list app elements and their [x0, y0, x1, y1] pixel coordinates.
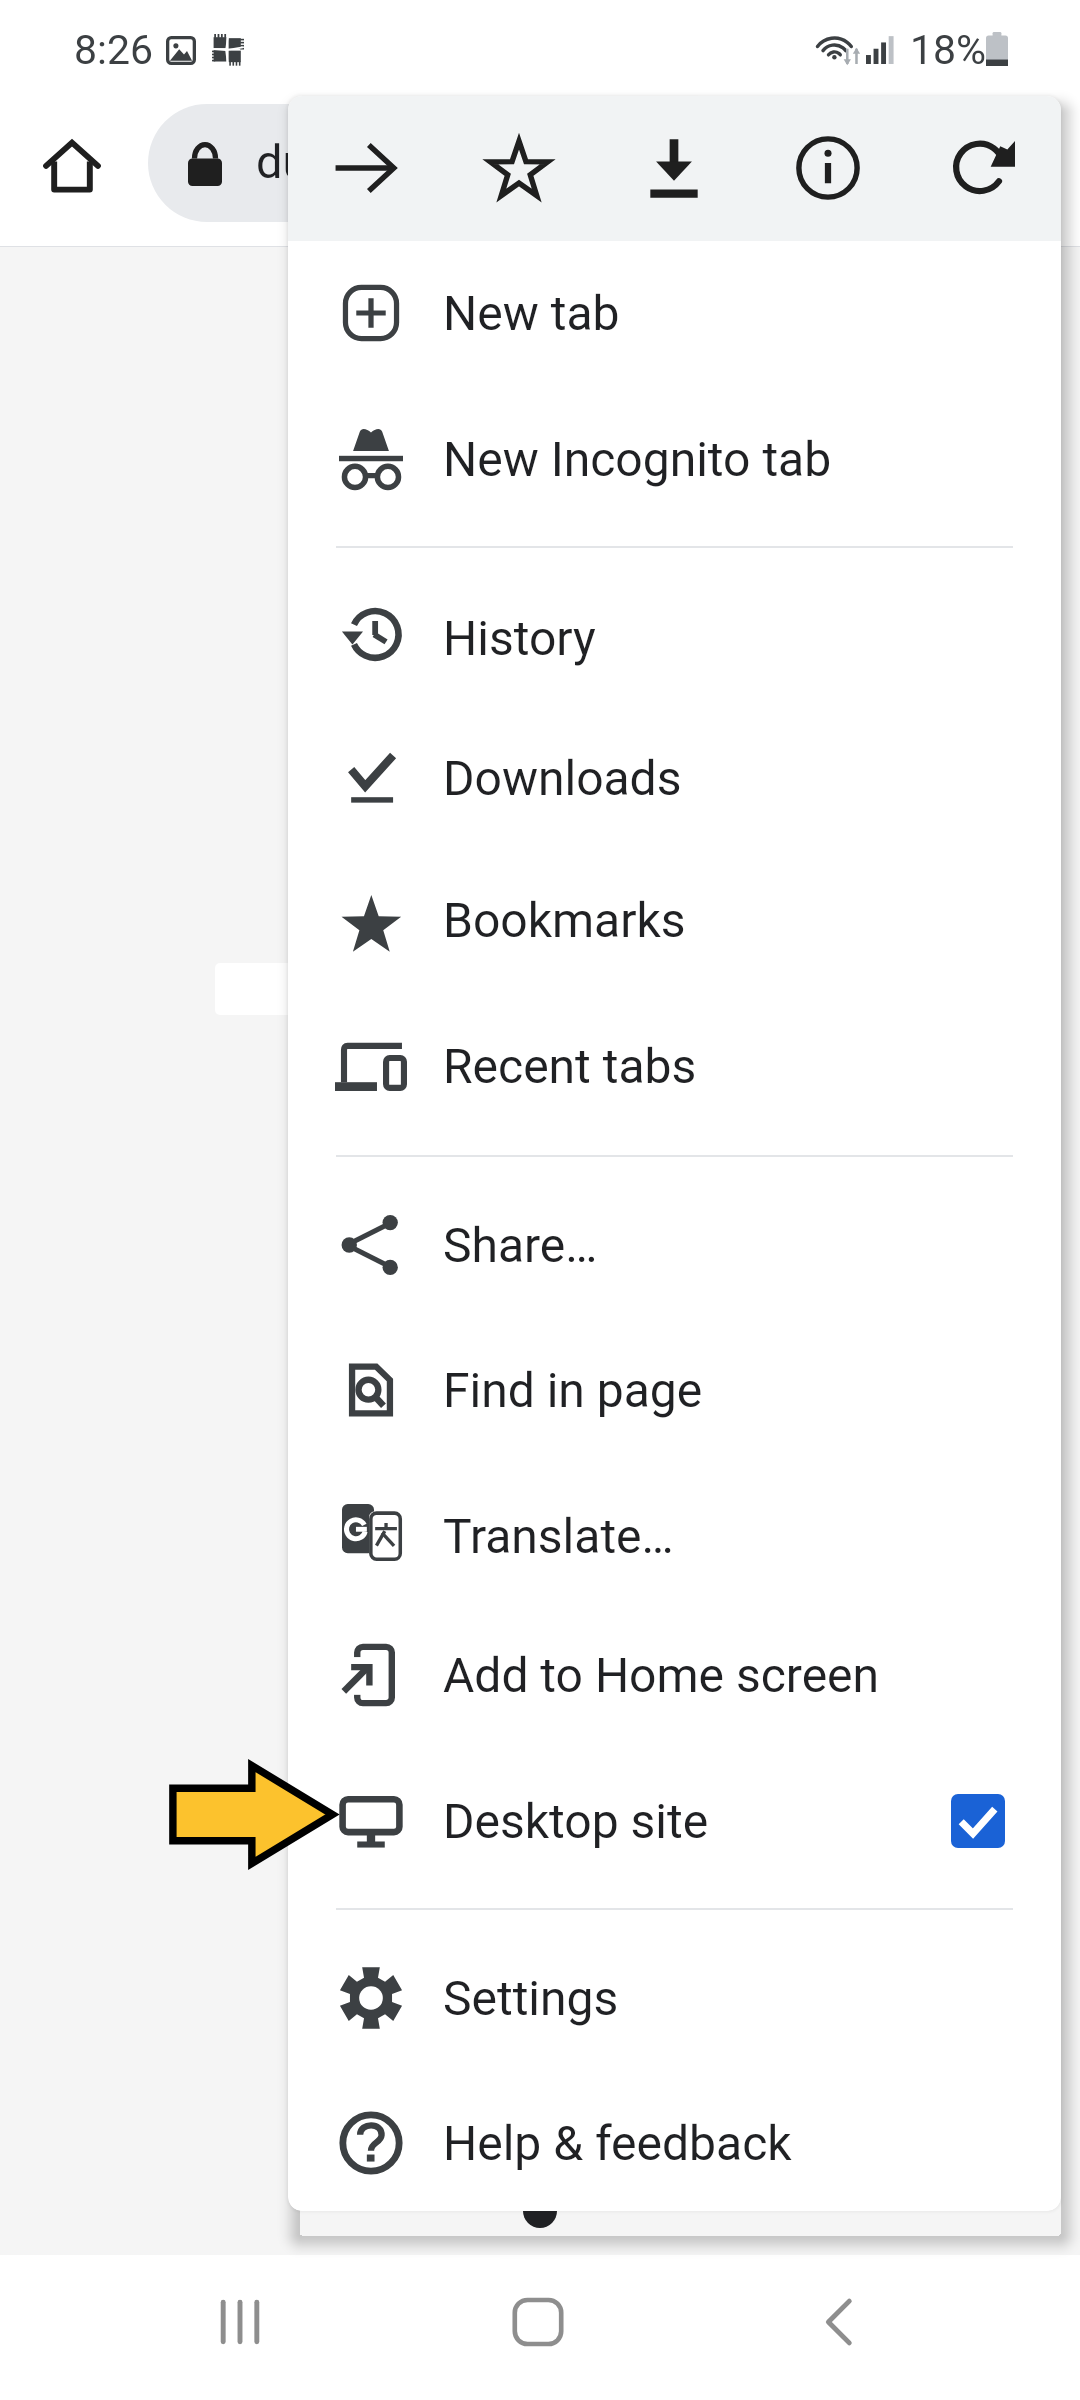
staticText: New Incognito tab	[443, 431, 832, 487]
staticText: Find in page	[443, 1362, 703, 1418]
staticText: Downloads	[443, 750, 682, 806]
button[interactable]: Bookmark	[453, 102, 585, 234]
button[interactable]: New tab	[288, 240, 1061, 386]
button[interactable]: Home	[478, 2262, 598, 2382]
button[interactable]: Help & feedback	[288, 2070, 1061, 2211]
button[interactable]: Downloads	[288, 705, 1061, 851]
button[interactable]: Address bar	[148, 104, 968, 222]
staticText: Help & feedback	[443, 2115, 792, 2171]
button[interactable]: Find in page	[288, 1317, 1061, 1463]
button[interactable]: Forward	[299, 102, 431, 234]
staticText: Add to Home screen	[443, 1647, 880, 1703]
button[interactable]: Translate…	[288, 1463, 1061, 1609]
staticText: History	[443, 610, 596, 666]
button[interactable]: Desktop site	[288, 1748, 1061, 1894]
button[interactable]: History	[288, 565, 1061, 711]
staticText: Settings	[443, 1970, 619, 2026]
button[interactable]: New Incognito tab	[288, 386, 1061, 532]
button[interactable]: Add to Home screen	[288, 1602, 1061, 1748]
button[interactable]: Reload	[917, 102, 1049, 234]
staticText: Translate…	[443, 1508, 674, 1564]
button[interactable]: Home	[19, 115, 124, 220]
staticText: 18%	[910, 26, 987, 74]
button[interactable]: Back	[780, 2262, 900, 2382]
staticText: Desktop site	[443, 1793, 709, 1849]
staticText: 8:26	[74, 26, 154, 74]
button[interactable]: Recent tabs	[288, 993, 1061, 1139]
staticText: New tab	[443, 285, 620, 341]
button[interactable]: Recent apps	[180, 2262, 300, 2382]
staticText: Bookmarks	[443, 892, 686, 948]
staticText: Recent tabs	[443, 1038, 697, 1094]
staticText: Share…	[443, 1217, 598, 1273]
button[interactable]: Settings	[288, 1925, 1061, 2071]
button[interactable]: Share…	[288, 1172, 1061, 1318]
staticText: du	[256, 134, 309, 189]
button[interactable]: Download	[608, 102, 740, 234]
button[interactable]: Bookmarks	[288, 847, 1061, 993]
button[interactable]: Desktop site, on	[951, 1794, 1005, 1848]
button[interactable]: Page info	[762, 102, 894, 234]
